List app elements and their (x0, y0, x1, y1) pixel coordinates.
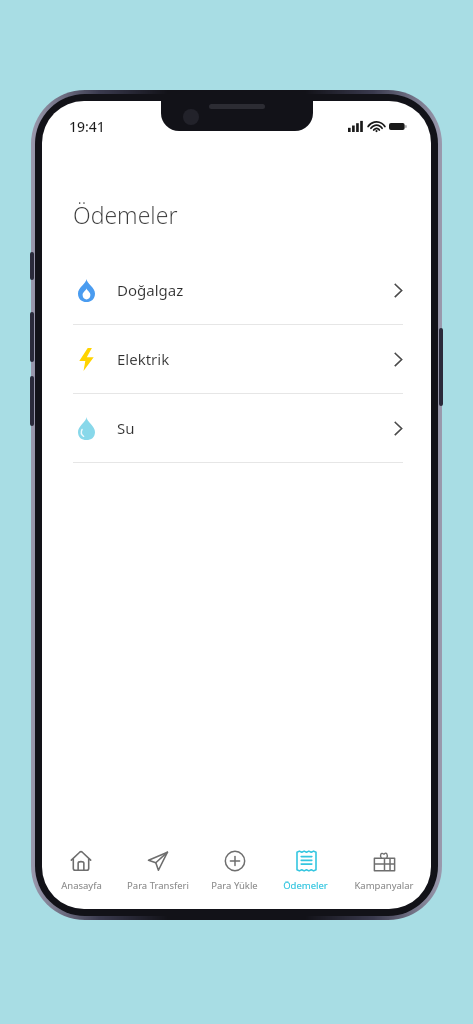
staticText: Su (117, 418, 135, 438)
button[interactable]: Para Yükle (199, 843, 270, 903)
button[interactable]: Elektrik (42, 325, 431, 393)
button[interactable]: Kampanyalar (341, 843, 427, 903)
staticText: Para Yükle (211, 879, 258, 892)
button[interactable]: Doğalgaz (42, 256, 431, 324)
button[interactable]: Anasayfa (46, 843, 116, 903)
staticText: Doğalgaz (117, 280, 184, 300)
staticText: Elektrik (117, 349, 170, 369)
staticText: Kampanyalar (354, 879, 414, 892)
button[interactable]: Ödemeler (270, 843, 341, 903)
staticText: Para Transferi (127, 879, 189, 892)
staticText: Ödemeler (73, 199, 178, 230)
staticText: Anasayfa (61, 879, 102, 892)
button[interactable]: Su (42, 394, 431, 462)
staticText: Ödemeler (283, 879, 328, 892)
button[interactable]: Para Transferi (116, 843, 199, 903)
staticText: 19:41 (69, 117, 105, 136)
